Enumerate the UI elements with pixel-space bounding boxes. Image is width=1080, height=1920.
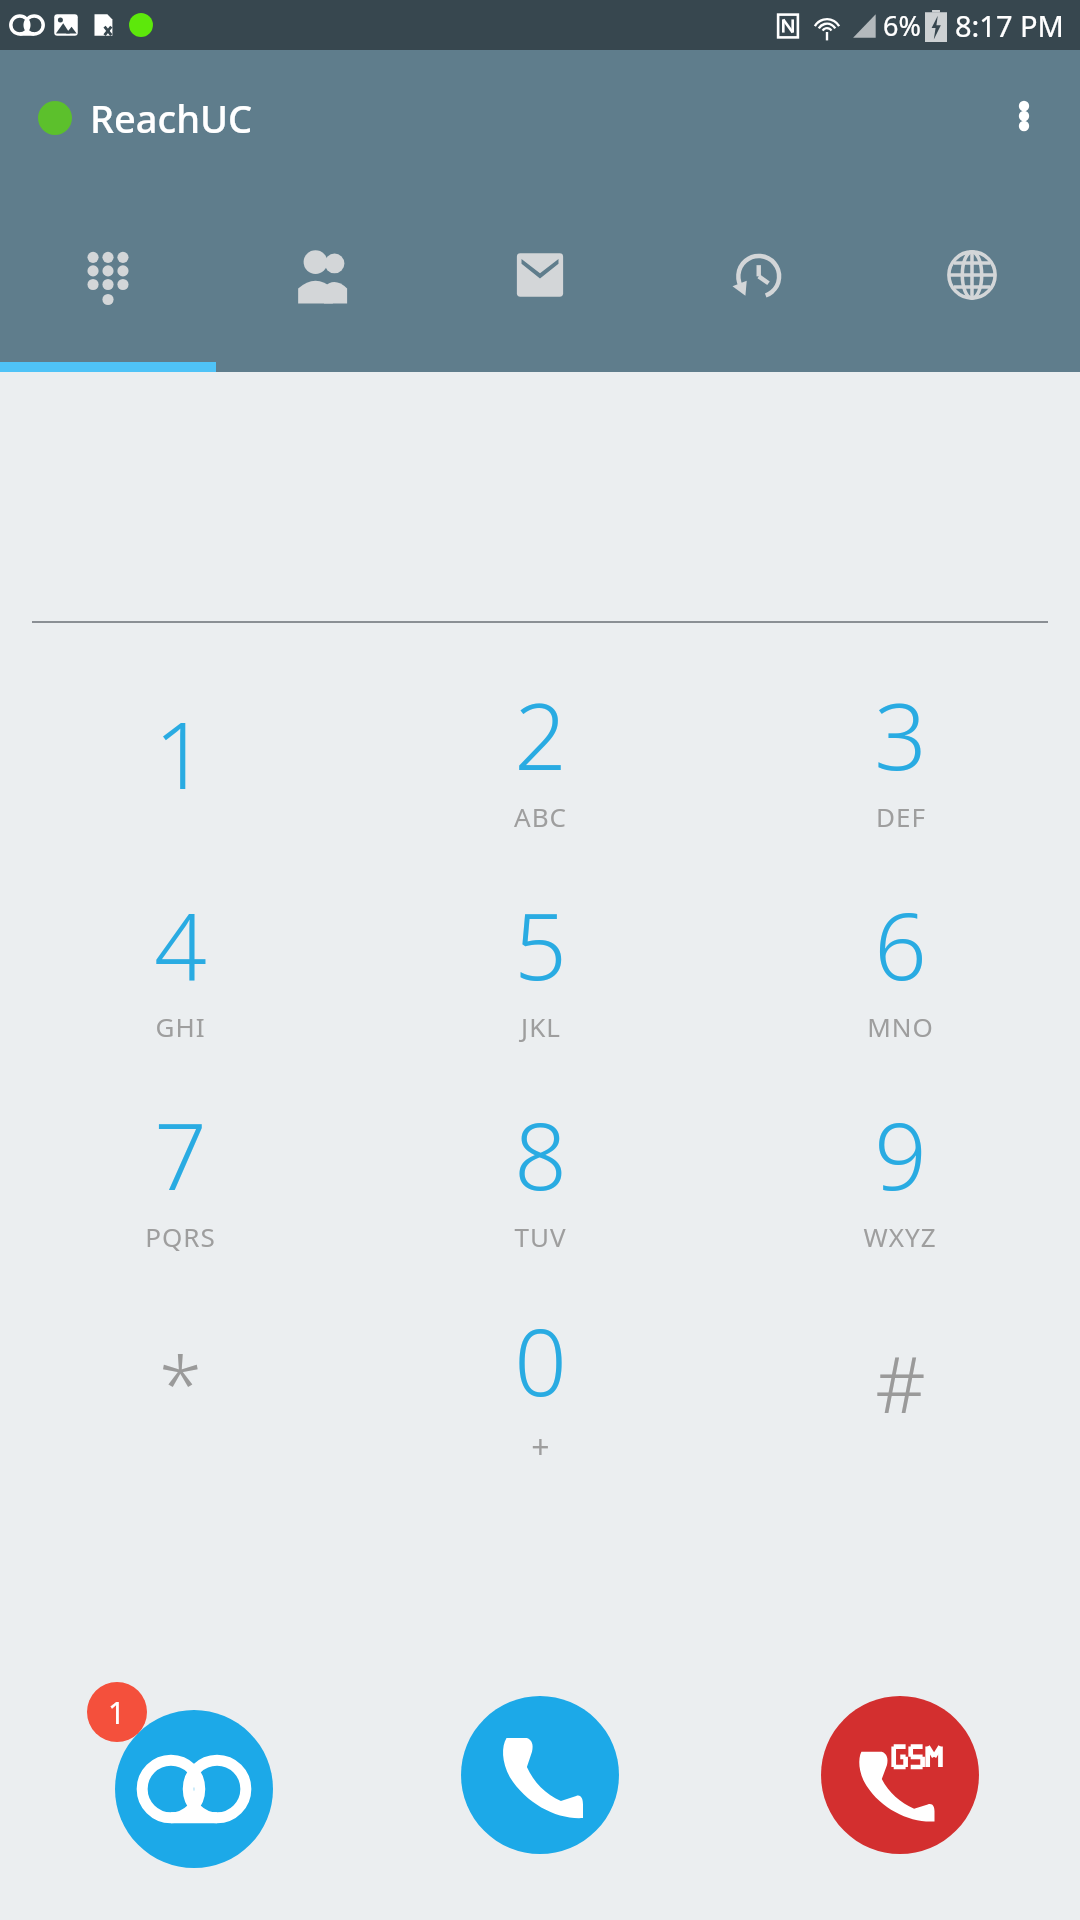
staticText: 1 [108,1692,126,1733]
staticText: 6 [874,882,927,1007]
button[interactable]: 5 [360,866,720,1076]
staticText: GHI [155,1009,206,1044]
staticText: JKL [521,1009,561,1044]
staticText: DEF [876,799,926,834]
button[interactable]: 6 [720,866,1080,1076]
button[interactable]: Dialpad [0,210,216,340]
staticText: 9 [874,1092,927,1217]
staticText: 8:17 PM [955,6,1064,45]
button[interactable]: More options [986,78,1062,154]
button[interactable]: Web [864,210,1080,340]
staticText: 2 [514,672,567,797]
staticText: WXYZ [863,1219,937,1254]
staticText: 7 [154,1092,207,1217]
button[interactable]: * [0,1286,360,1496]
button[interactable]: Call with GSM [821,1696,979,1854]
button[interactable]: Contacts [216,210,432,340]
button[interactable]: 4 [0,866,360,1076]
button[interactable]: 8 [360,1076,720,1286]
button[interactable]: 9 [720,1076,1080,1286]
button[interactable]: History [648,210,864,340]
button[interactable]: Messages [432,210,648,340]
staticText: 3 [874,672,927,797]
staticText: ABC [514,799,567,834]
button[interactable]: # [720,1286,1080,1496]
staticText: 6% [883,7,921,44]
button[interactable]: 3 [720,656,1080,866]
button[interactable]: Call [461,1696,619,1854]
staticText: + [531,1425,551,1469]
button[interactable]: 2 [360,656,720,866]
staticText: 4 [154,882,207,1007]
staticText: 8 [514,1092,567,1217]
staticText: * [159,1330,202,1436]
button[interactable]: 7 [0,1076,360,1286]
staticText: PQRS [145,1219,216,1254]
button[interactable]: 1 [0,656,360,866]
staticText: # [875,1330,926,1436]
staticText: MNO [867,1009,934,1044]
staticText: TUV [514,1219,567,1254]
button[interactable]: Voicemail, 1 new [87,1682,273,1868]
button[interactable]: 0 [360,1286,720,1496]
staticText: 5 [514,882,567,1007]
button[interactable]: ReachUC [38,92,253,144]
staticText: 0 [514,1298,567,1423]
staticText: 1 [154,691,207,816]
staticText: ReachUC [90,92,253,144]
